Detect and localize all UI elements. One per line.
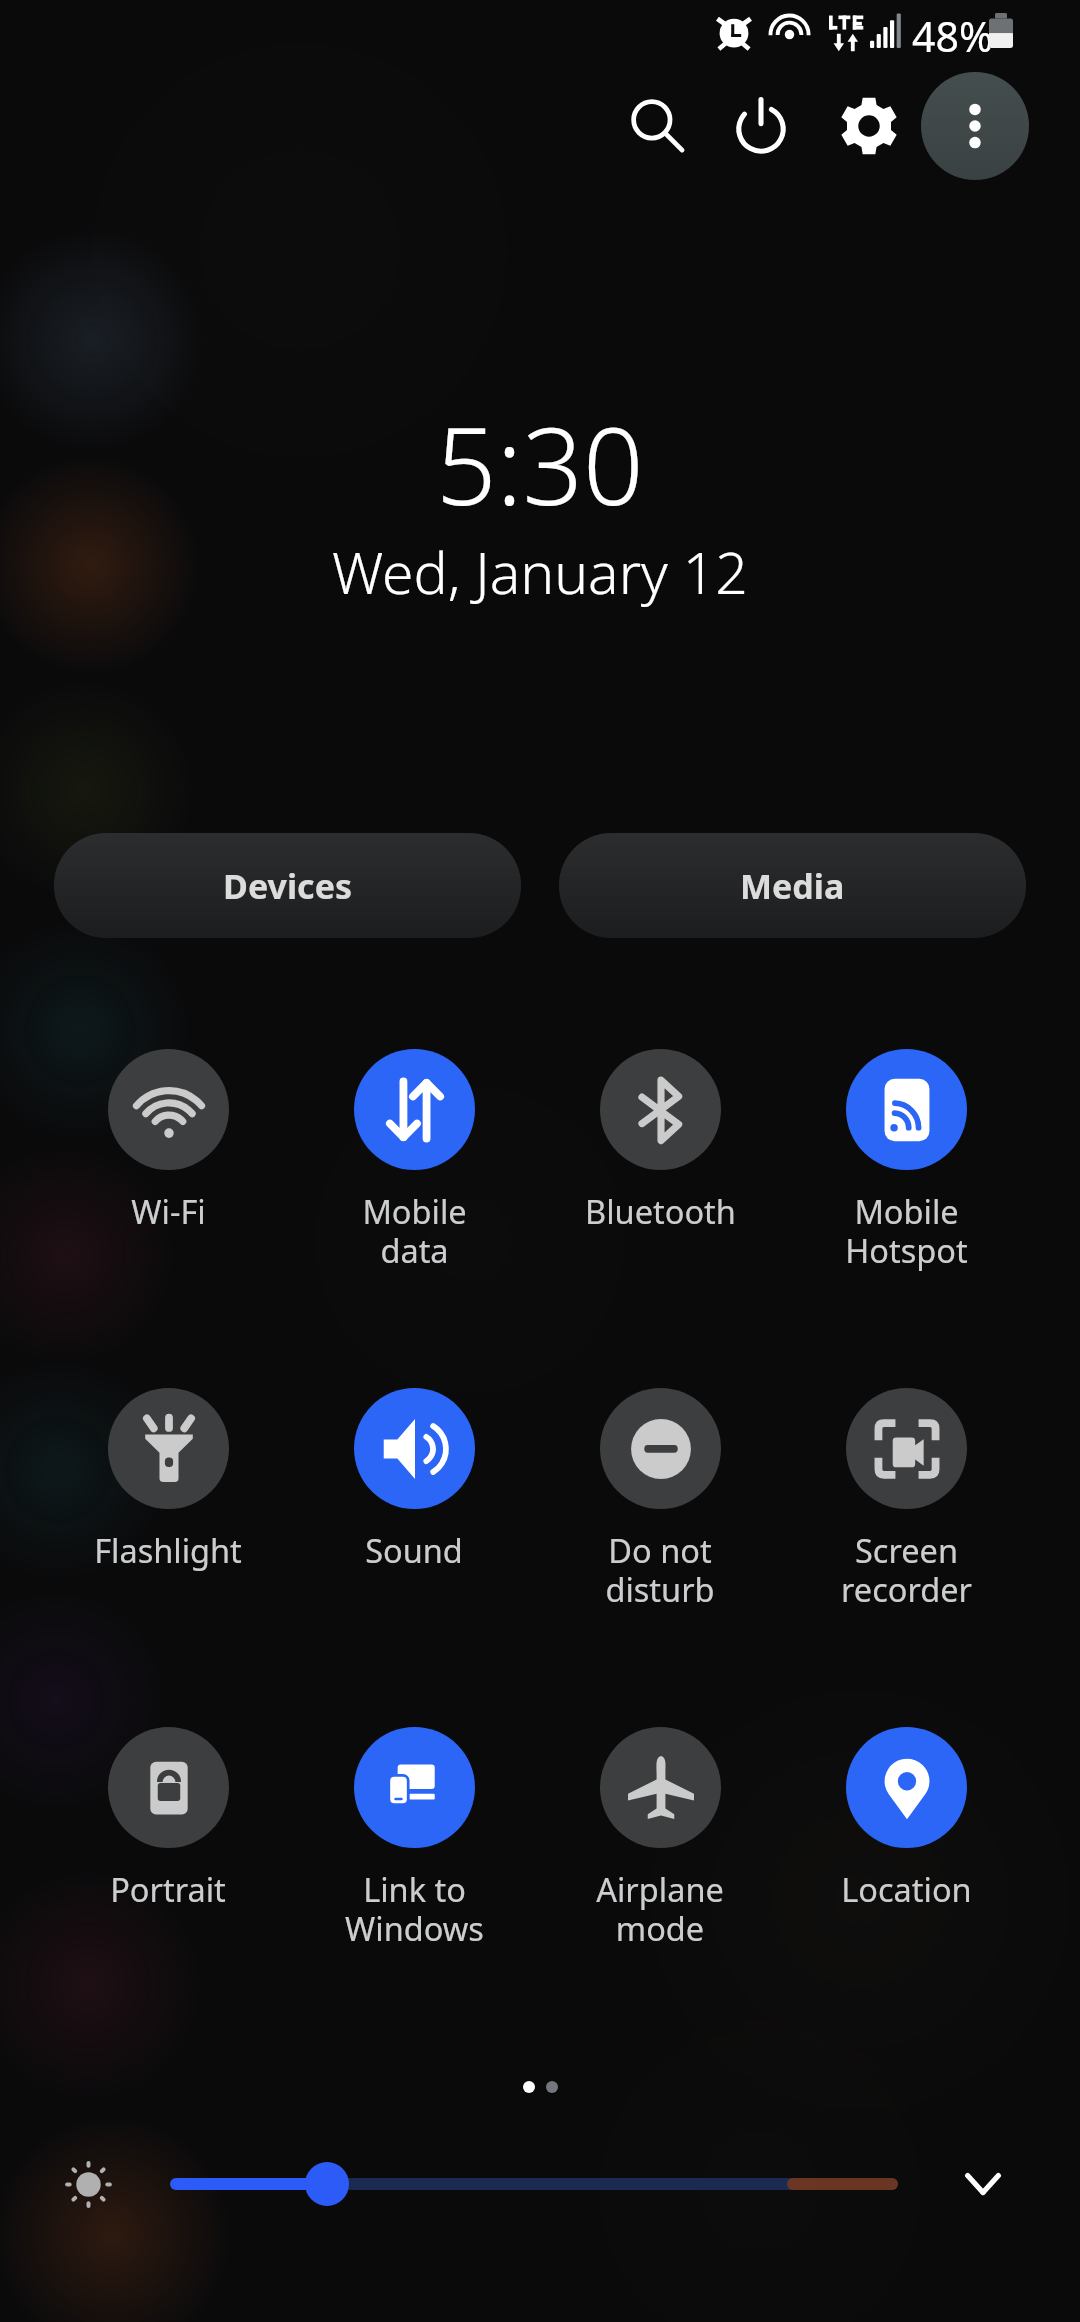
staticText: Wed, January 12 [332,533,748,611]
staticText: Wi-Fi [131,1189,206,1233]
button[interactable]: Power off [707,72,815,180]
button[interactable]: Mobile data [291,1043,537,1272]
button[interactable]: Bluetooth [537,1043,783,1233]
button[interactable]: Wi-Fi [45,1043,291,1233]
staticText: Airplane mode [596,1867,724,1950]
button[interactable]: Flashlight [45,1382,291,1572]
staticText: Mobile Hotspot [845,1189,968,1272]
staticText: Flashlight [94,1528,242,1572]
staticText: Link to Windows [345,1867,484,1950]
other: Alarm set [716,13,752,49]
button[interactable]: Sound [291,1382,537,1572]
staticText: Portrait [110,1867,226,1911]
button[interactable]: Search [604,72,712,180]
staticText: Screen recorder [841,1528,972,1611]
staticText: Bluetooth [585,1189,736,1233]
button[interactable]: Location [783,1721,1029,1911]
staticText: Sound [365,1528,463,1572]
button[interactable]: Expand quick settings [941,2142,1025,2226]
staticText: Location [841,1867,972,1911]
staticText: 48% [912,8,993,60]
staticText: Devices [223,863,352,909]
button[interactable]: Portrait [45,1721,291,1911]
button[interactable]: Airplane mode [537,1721,783,1950]
other: Hotspot active [769,12,810,53]
button[interactable]: Do not disturb [537,1382,783,1611]
button[interactable]: Mobile Hotspot [783,1043,1029,1272]
button[interactable]: More options [921,72,1029,180]
staticText: Media [740,863,845,909]
button[interactable]: Auto brightness [46,2142,130,2226]
button[interactable]: Link to Windows [291,1721,537,1950]
button[interactable]: Media [559,833,1026,938]
button[interactable]: Settings [815,72,923,180]
staticText: Mobile data [362,1189,467,1272]
button[interactable]: Devices [54,833,521,938]
button[interactable]: Screen recorder [783,1382,1029,1611]
staticText: 5:30 [436,392,644,536]
button[interactable] [176,2139,892,2229]
staticText: Do not disturb [605,1528,715,1611]
